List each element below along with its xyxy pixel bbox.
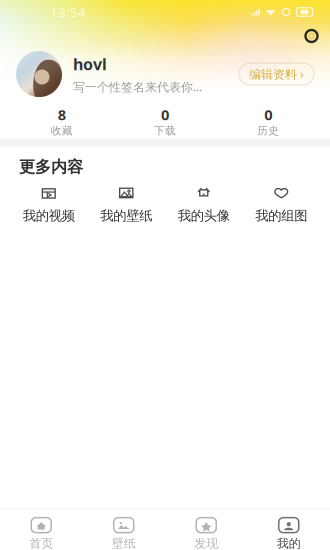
staticText: 13:54 (50, 3, 86, 21)
button[interactable]: 我的壁纸 (87, 185, 165, 224)
staticText: 收藏 (51, 124, 73, 137)
staticText: 下载 (154, 124, 176, 137)
button[interactable]: 编辑资料 › (239, 63, 314, 85)
staticText: 壁纸 (112, 536, 136, 550)
button[interactable]: 我的头像 (165, 185, 242, 224)
button[interactable]: 8 (10, 105, 113, 137)
staticText: 8 (58, 105, 66, 124)
staticText: 我的头像 (178, 208, 230, 224)
staticText: 发现 (194, 536, 218, 550)
staticText: 首页 (29, 536, 53, 550)
staticText: 我的壁纸 (100, 208, 152, 224)
staticText: 写一个性签名来代表你吧… (73, 79, 210, 95)
button[interactable]: 壁纸 (82, 517, 165, 550)
staticText: 0 (264, 105, 272, 124)
staticText: 历史 (257, 124, 279, 137)
button[interactable]: 0 (113, 105, 217, 137)
button[interactable]: 我的 (247, 517, 330, 550)
button[interactable]: 首页 (0, 517, 82, 550)
staticText: 更多内容 (19, 157, 83, 177)
staticText: 编辑资料 › (249, 66, 304, 82)
staticText: 我的 (277, 536, 301, 550)
button[interactable]: 我的视频 (10, 185, 87, 224)
button[interactable]: 0 (217, 105, 320, 137)
staticText: 我的视频 (23, 208, 75, 224)
staticText: 0 (161, 105, 169, 124)
staticText: hovl (73, 53, 107, 75)
staticText: 我的组图 (255, 208, 307, 224)
button[interactable]: Settings (299, 23, 324, 48)
button[interactable]: 发现 (165, 517, 247, 550)
button[interactable]: 我的组图 (242, 185, 320, 224)
